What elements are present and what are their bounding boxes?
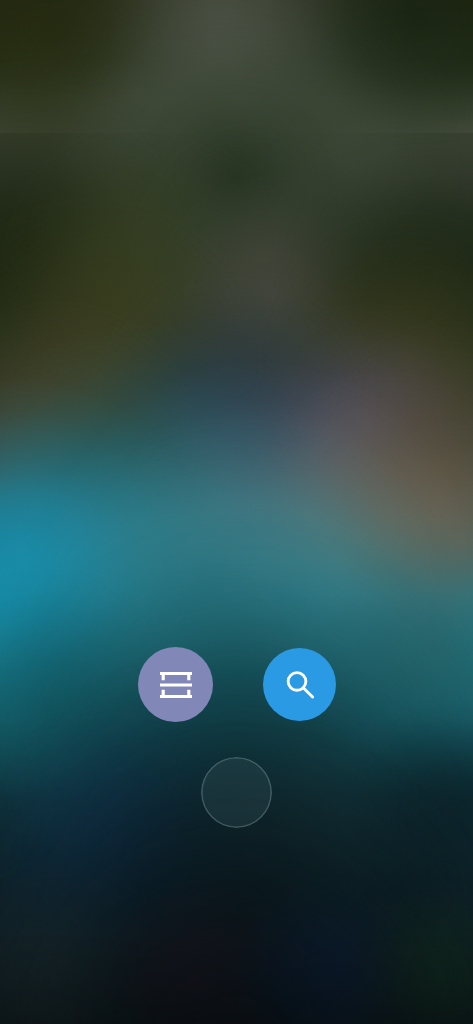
button[interactable]: Search [263,648,336,721]
button[interactable]: View list [138,647,213,722]
button[interactable]: Hidden action [201,757,272,828]
